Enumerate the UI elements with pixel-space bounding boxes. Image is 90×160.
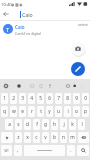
staticText: !#1 [4, 149, 9, 153]
button[interactable]: Backspace [78, 132, 89, 143]
button[interactable]: s [15, 119, 22, 130]
staticText: g [44, 121, 47, 128]
button[interactable]: o [73, 106, 80, 117]
button[interactable]: j [60, 119, 67, 130]
staticText: 4 [30, 95, 33, 102]
button[interactable]: b [51, 132, 58, 143]
button[interactable]: k [69, 119, 76, 130]
staticText: n [62, 134, 65, 141]
button[interactable]: !#1 [1, 145, 12, 156]
button[interactable]: p [82, 106, 89, 117]
button[interactable]: r [28, 106, 35, 117]
button[interactable]: T [0, 21, 90, 35]
button[interactable]: q [1, 106, 8, 117]
button[interactable]: 4 [28, 93, 35, 104]
staticText: 7 [57, 95, 60, 102]
staticText: a [8, 121, 11, 128]
button[interactable]: d [24, 119, 31, 130]
staticText: l [81, 121, 83, 128]
staticText: t [40, 108, 42, 115]
staticText: f [36, 121, 38, 128]
staticText: q [3, 108, 6, 115]
button[interactable]: Back [0, 8, 12, 20]
staticText: e [21, 108, 24, 115]
button[interactable]: Space [24, 145, 65, 156]
button[interactable]: 0 [82, 93, 89, 104]
button[interactable]: n [60, 132, 67, 143]
staticText: v [44, 134, 47, 141]
button[interactable]: e [19, 106, 26, 117]
staticText: p [84, 108, 87, 115]
button[interactable]: 7 [55, 93, 62, 104]
button[interactable]: icon1 [15, 82, 22, 89]
button[interactable]: i [64, 106, 71, 117]
button[interactable]: h [51, 119, 58, 130]
button[interactable]: . [67, 145, 75, 156]
staticText: 8 [66, 95, 69, 102]
staticText: 9 [75, 95, 78, 102]
staticText: 1 [3, 95, 6, 102]
staticText: m [70, 134, 75, 141]
button[interactable]: 8 [64, 93, 71, 104]
button[interactable]: 5 [37, 93, 44, 104]
staticText: z [17, 134, 20, 141]
button[interactable]: 9 [73, 93, 80, 104]
staticText: 2 [12, 95, 15, 102]
staticText: y [48, 108, 51, 115]
button[interactable]: icon0 [2, 82, 9, 89]
button[interactable]: u [55, 106, 62, 117]
staticText: i [67, 108, 69, 115]
staticText: 5 [39, 95, 42, 102]
button[interactable]: icon3 [37, 82, 44, 89]
staticText: s [17, 121, 20, 128]
staticText: c [35, 134, 38, 141]
button[interactable]: Search [77, 145, 89, 156]
button[interactable]: v [42, 132, 49, 143]
button[interactable]: 1 [1, 93, 8, 104]
button[interactable]: c [33, 132, 40, 143]
button[interactable]: Shift [1, 132, 13, 143]
staticText: T [6, 26, 10, 33]
staticText: 10:40 [1, 2, 12, 8]
staticText: k [71, 121, 74, 128]
button[interactable]: 3 [19, 93, 26, 104]
staticText: ontem [78, 23, 88, 27]
button[interactable]: 2 [10, 93, 17, 104]
button[interactable]: t [37, 106, 44, 117]
staticText: o [75, 108, 78, 115]
button[interactable]: , [14, 145, 22, 156]
staticText: 3 [21, 95, 24, 102]
button[interactable]: Compose message [71, 62, 85, 76]
staticText: Caio [15, 24, 25, 30]
staticText: h [53, 121, 56, 128]
staticText: . [70, 147, 72, 154]
button[interactable]: icon6 [71, 82, 78, 89]
staticText: Card 4 no digital [15, 31, 42, 36]
button[interactable]: icon5 [64, 82, 71, 89]
staticText: w [12, 108, 16, 115]
button[interactable]: g [42, 119, 49, 130]
button[interactable]: 6 [46, 93, 53, 104]
button[interactable]: Camera [71, 42, 85, 56]
button[interactable]: m [69, 132, 76, 143]
button[interactable]: w [10, 106, 17, 117]
staticText: u [57, 108, 60, 115]
staticText: Caio [22, 11, 33, 18]
button[interactable]: x [24, 132, 31, 143]
staticText: j [63, 121, 65, 128]
staticText: x [26, 134, 29, 141]
button[interactable]: icon4 [46, 82, 53, 89]
staticText: r [31, 108, 33, 115]
button[interactable]: z [15, 132, 22, 143]
staticText: 0 [84, 95, 87, 102]
staticText: , [17, 147, 19, 154]
button[interactable]: icon2 [28, 82, 35, 89]
staticText: 6 [48, 95, 51, 102]
staticText: b [53, 134, 56, 141]
button[interactable]: y [46, 106, 53, 117]
button[interactable]: l [78, 119, 85, 130]
staticText: d [26, 121, 29, 128]
button[interactable]: a [5, 119, 13, 130]
button[interactable]: f [33, 119, 40, 130]
